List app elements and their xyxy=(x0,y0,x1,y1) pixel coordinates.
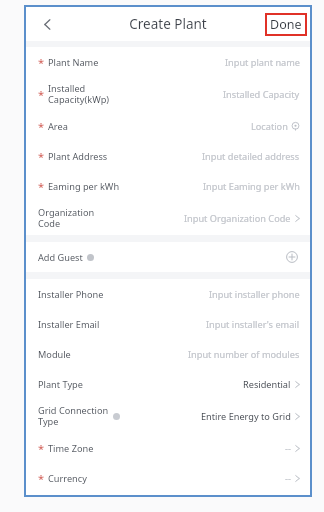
staticText: Installed Capacity(kWp) xyxy=(48,82,110,106)
staticText: Input number of modules xyxy=(188,348,300,361)
staticText: Plant Type xyxy=(38,378,83,391)
staticText: Installer Phone xyxy=(38,288,104,301)
staticText: Plant Name xyxy=(48,56,99,69)
button[interactable]: * xyxy=(26,47,310,77)
button[interactable]: * xyxy=(26,111,310,141)
staticText: Done xyxy=(270,16,302,33)
staticText: Area xyxy=(48,120,68,133)
staticText: Input Organization Code xyxy=(184,212,291,225)
staticText: Module xyxy=(38,348,71,361)
staticText: Eaming per kWh xyxy=(48,180,120,193)
button[interactable]: Organization Code xyxy=(26,201,310,235)
staticText: * xyxy=(38,471,45,486)
staticText: Residential xyxy=(243,378,291,391)
button[interactable]: * xyxy=(26,463,310,493)
button[interactable]: Installer Phone xyxy=(26,279,310,309)
staticText: Create Plant xyxy=(129,15,207,33)
staticText: Input installer phone xyxy=(209,288,300,301)
staticText: * xyxy=(38,87,45,102)
staticText: Grid Connection Type xyxy=(38,404,109,428)
staticText: Installer Email xyxy=(38,318,100,331)
staticText: Input detailed address xyxy=(202,150,300,163)
button[interactable]: * xyxy=(26,141,310,171)
button[interactable]: Grid Connection Type xyxy=(26,399,310,433)
button[interactable]: * xyxy=(26,171,310,201)
other: Add Guest xyxy=(284,249,300,265)
staticText: Input installer's email xyxy=(206,318,300,331)
staticText: Add Guest xyxy=(38,251,83,264)
staticText: * xyxy=(38,119,45,134)
staticText: * xyxy=(38,441,45,456)
staticText: Plant Address xyxy=(48,150,108,163)
button[interactable]: * xyxy=(26,77,310,111)
button[interactable]: Done xyxy=(270,16,302,33)
staticText: * xyxy=(38,55,45,70)
button[interactable]: Module xyxy=(26,339,310,369)
button[interactable]: * xyxy=(26,433,310,463)
button[interactable]: Back xyxy=(32,9,62,39)
staticText: Time Zone xyxy=(48,442,94,455)
staticText: Installed Capacity xyxy=(223,88,300,101)
staticText: * xyxy=(38,179,45,194)
staticText: Input Eaming per kWh xyxy=(203,180,300,193)
staticText: * xyxy=(38,149,45,164)
staticText: -- xyxy=(285,472,291,485)
button[interactable]: Installer Email xyxy=(26,309,310,339)
staticText: Organization Code xyxy=(38,206,95,230)
staticText: Input plant name xyxy=(225,56,300,69)
staticText: -- xyxy=(285,442,291,455)
staticText: Entire Energy to Grid xyxy=(201,410,291,423)
button[interactable]: Add Guest xyxy=(26,242,310,272)
staticText: Location xyxy=(251,120,288,133)
button[interactable]: Plant Type xyxy=(26,369,310,399)
staticText: Currency xyxy=(48,472,87,485)
